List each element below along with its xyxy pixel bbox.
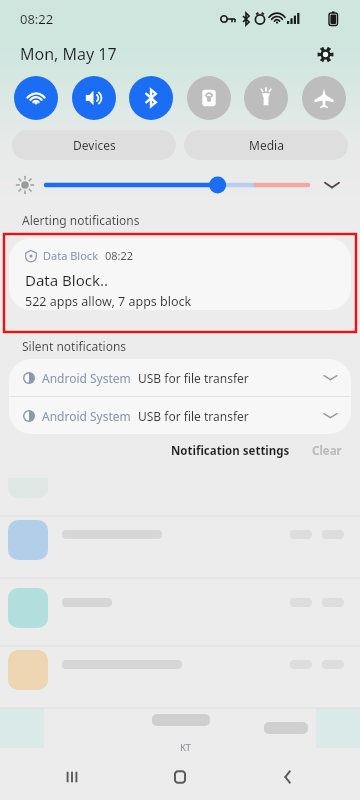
- button[interactable]: Auto rotate: [187, 76, 231, 120]
- staticText: Data Block..: [25, 270, 109, 290]
- staticText: KT: [180, 741, 191, 753]
- button[interactable]: Android System: [9, 359, 351, 396]
- button[interactable]: Clear: [308, 443, 346, 459]
- button[interactable]: Devices: [12, 130, 176, 160]
- button[interactable]: Notification settings: [167, 443, 294, 459]
- button[interactable]: Brightness: [46, 175, 308, 195]
- button[interactable]: Expand quick settings: [320, 173, 344, 197]
- button[interactable]: Bluetooth: [129, 76, 173, 120]
- button[interactable]: Android System: [9, 397, 351, 434]
- other: Expand notification: [324, 409, 337, 422]
- staticText: Android System: [42, 408, 131, 424]
- staticText: Clear: [312, 443, 342, 459]
- staticText: Alerting notifications: [22, 212, 140, 228]
- staticText: Silent notifications: [22, 338, 127, 354]
- staticText: Devices: [73, 137, 116, 153]
- staticText: 522 apps allow, 7 apps block: [25, 293, 192, 310]
- staticText: Data Block: [43, 248, 98, 263]
- button[interactable]: Recents: [36, 754, 108, 800]
- button[interactable]: Back: [252, 754, 324, 800]
- button[interactable]: Media: [184, 130, 348, 160]
- button[interactable]: Airplane mode: [302, 76, 346, 120]
- button[interactable]: Data Block: [9, 238, 351, 310]
- staticText: 08:22: [105, 248, 134, 263]
- button[interactable]: Settings: [310, 39, 340, 69]
- other: Expand notification: [324, 371, 337, 384]
- button[interactable]: Home: [144, 754, 216, 800]
- button[interactable]: Sound: [72, 76, 116, 120]
- button[interactable]: Wi-Fi: [14, 76, 58, 120]
- staticText: Android System: [42, 370, 131, 386]
- staticText: Media: [249, 137, 284, 153]
- button[interactable]: Flashlight: [244, 76, 288, 120]
- staticText: USB for file transfer: [138, 408, 249, 424]
- staticText: Notification settings: [171, 443, 290, 459]
- staticText: USB for file transfer: [138, 370, 249, 386]
- staticText: 08:22: [20, 10, 54, 28]
- staticText: Mon, May 17: [20, 43, 117, 65]
